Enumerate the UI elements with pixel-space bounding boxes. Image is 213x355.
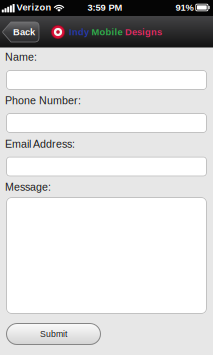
button[interactable]: Text field <box>6 156 207 176</box>
staticText: Phone Number: <box>5 94 81 106</box>
button[interactable]: Text field <box>6 197 207 314</box>
staticText: Mobile <box>91 27 122 37</box>
staticText: Back <box>13 27 35 37</box>
button[interactable]: Submit <box>6 323 101 345</box>
staticText: Designs <box>125 27 162 37</box>
staticText: Name: <box>5 51 37 63</box>
staticText: Message: <box>5 181 51 193</box>
staticText: Email Address: <box>5 138 75 150</box>
staticText: Verizon <box>16 2 51 12</box>
staticText: Submit <box>40 329 67 339</box>
button[interactable]: Text field <box>6 70 207 90</box>
staticText: 91% <box>175 2 193 13</box>
button[interactable]: Back <box>2 22 39 42</box>
staticText: Indy <box>69 27 89 37</box>
staticText: 3:59 PM <box>87 2 122 13</box>
button[interactable]: Text field <box>6 113 207 133</box>
